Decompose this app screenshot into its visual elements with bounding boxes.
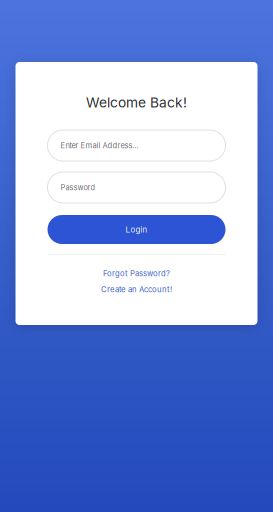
button[interactable]: Enter Email Address... [47, 130, 225, 161]
staticText: Welcome Back! [86, 94, 187, 111]
button[interactable]: Forgot Password? [103, 268, 170, 279]
staticText: Enter Email Address... [60, 141, 138, 150]
button[interactable]: Password [47, 172, 225, 203]
button[interactable]: Create an Account! [101, 284, 172, 295]
staticText: Login [125, 225, 147, 234]
staticText: Forgot Password? [103, 269, 170, 278]
button[interactable]: Login [47, 215, 225, 244]
staticText: Create an Account! [101, 285, 172, 294]
staticText: Password [60, 183, 95, 192]
